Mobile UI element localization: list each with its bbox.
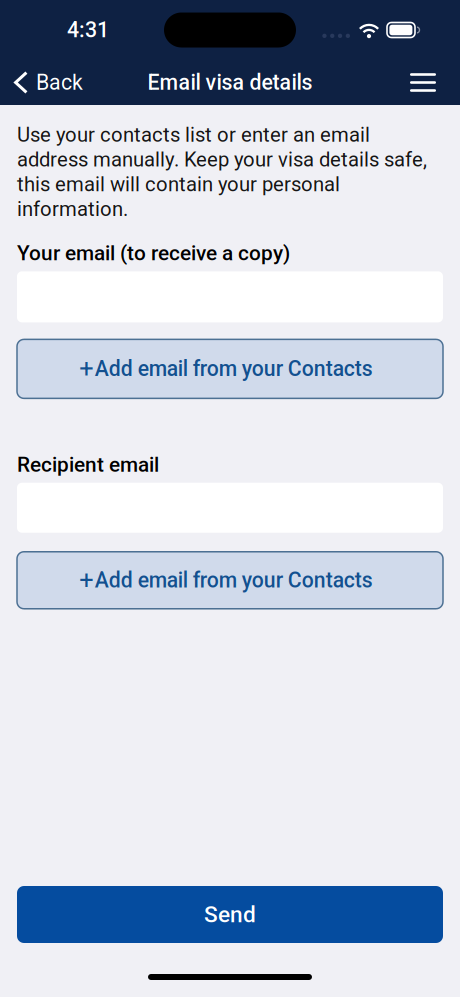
staticText: +: [79, 354, 93, 384]
staticText: Send: [204, 901, 256, 928]
staticText: 4:31: [67, 17, 109, 42]
staticText: Your email (to receive a copy): [17, 241, 290, 265]
button[interactable]: Menu: [399, 60, 447, 105]
button[interactable]: +: [17, 552, 443, 609]
staticText: Add email from your Contacts: [95, 356, 373, 381]
staticText: Add email from your Contacts: [95, 568, 373, 593]
staticText: Recipient email: [17, 452, 159, 477]
staticText: Email visa details: [147, 70, 312, 95]
staticText: +: [79, 565, 93, 595]
staticText: Back: [36, 70, 83, 95]
button[interactable]: Back: [0, 60, 95, 105]
button[interactable]: +: [17, 339, 443, 398]
staticText: Use your contacts list or enter an email…: [17, 123, 427, 221]
button[interactable]: Send: [17, 886, 443, 943]
